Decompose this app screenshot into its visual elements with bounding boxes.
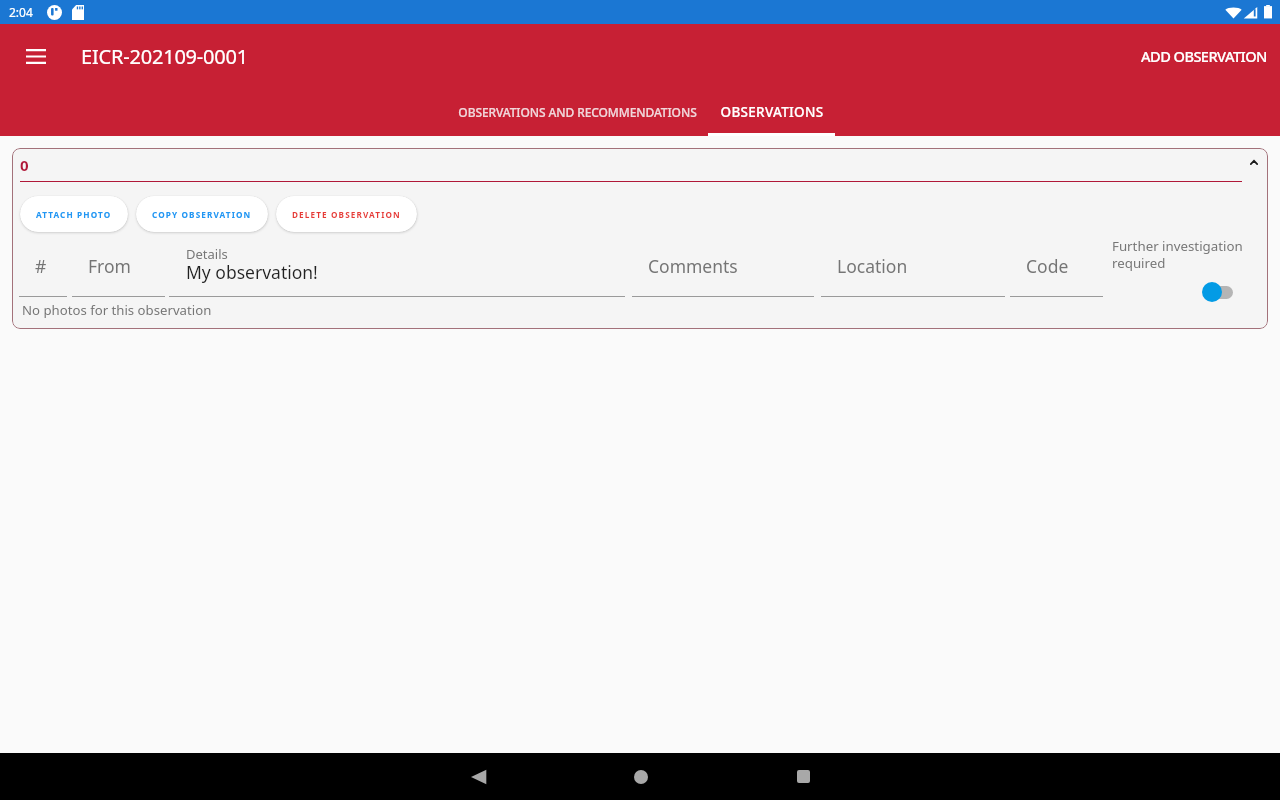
button[interactable]: ATTACH PHOTO: [20, 196, 128, 232]
button[interactable]: OBSERVATIONS: [708, 88, 835, 136]
staticText: DELETE OBSERVATION: [292, 209, 401, 220]
staticText: My observation!: [186, 260, 318, 284]
button[interactable]: Code: [1010, 235, 1103, 297]
staticText: 2:04: [9, 4, 33, 20]
button[interactable]: Details: [169, 235, 625, 297]
staticText: OBSERVATIONS: [720, 103, 824, 121]
button[interactable]: DELETE OBSERVATION: [276, 196, 417, 232]
staticText: No photos for this observation: [22, 301, 212, 319]
button[interactable]: From: [72, 235, 165, 297]
staticText: COPY OBSERVATION: [152, 209, 252, 220]
button[interactable]: Location: [821, 235, 1005, 297]
staticText: 0: [20, 155, 29, 175]
staticText: Comments: [648, 254, 738, 278]
staticText: Location: [837, 254, 908, 278]
button[interactable]: Further investigation required: [1195, 277, 1239, 307]
staticText: Details: [186, 245, 228, 263]
staticText: ADD OBSERVATION: [1141, 46, 1267, 66]
staticText: From: [88, 254, 131, 278]
button[interactable]: 0: [12, 148, 1268, 182]
button[interactable]: Comments: [632, 235, 814, 297]
button[interactable]: Recents: [779, 753, 827, 800]
button[interactable]: OBSERVATIONS AND RECOMMENDATIONS: [447, 88, 708, 136]
button[interactable]: Collapse: [1242, 150, 1266, 174]
staticText: #: [35, 254, 47, 278]
button[interactable]: Menu: [16, 36, 56, 76]
staticText: ATTACH PHOTO: [36, 209, 112, 220]
button[interactable]: Back: [454, 753, 502, 800]
staticText: Further investigation required: [1112, 237, 1243, 272]
staticText: OBSERVATIONS AND RECOMMENDATIONS: [458, 104, 697, 120]
button[interactable]: Home: [617, 753, 665, 800]
button[interactable]: ADD OBSERVATION: [1133, 36, 1275, 76]
button[interactable]: COPY OBSERVATION: [136, 196, 268, 232]
button[interactable]: #: [19, 235, 67, 297]
staticText: Code: [1026, 254, 1069, 278]
staticText: EICR-202109-0001: [81, 43, 249, 70]
